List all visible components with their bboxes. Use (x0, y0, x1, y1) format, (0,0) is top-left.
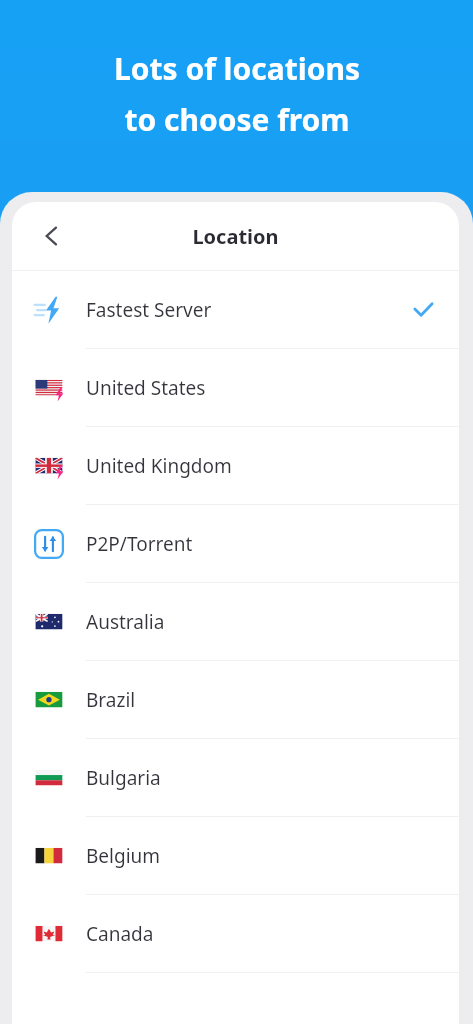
staticText: Australia (86, 609, 435, 635)
staticText: Bulgaria (86, 765, 435, 791)
staticText: United Kingdom (86, 453, 435, 479)
staticText: Belgium (86, 843, 435, 869)
button[interactable]: United States (12, 349, 459, 426)
staticText: United States (86, 375, 435, 401)
button[interactable]: Fastest Server (12, 271, 459, 348)
staticText: Fastest Server (86, 297, 411, 323)
button[interactable]: United Kingdom (12, 427, 459, 504)
button[interactable]: Canada (12, 895, 459, 972)
staticText: Lots of locations (114, 48, 360, 89)
button[interactable]: P2P/Torrent (12, 505, 459, 582)
button[interactable]: Brazil (12, 661, 459, 738)
staticText: P2P/Torrent (86, 531, 435, 557)
button[interactable]: Bulgaria (12, 739, 459, 816)
staticText: to choose from (124, 99, 350, 140)
button[interactable]: Australia (12, 583, 459, 660)
button[interactable]: Belgium (12, 817, 459, 894)
button[interactable]: Back (30, 214, 74, 258)
staticText: Canada (86, 921, 435, 947)
staticText: Location (192, 223, 279, 250)
staticText: Brazil (86, 687, 435, 713)
